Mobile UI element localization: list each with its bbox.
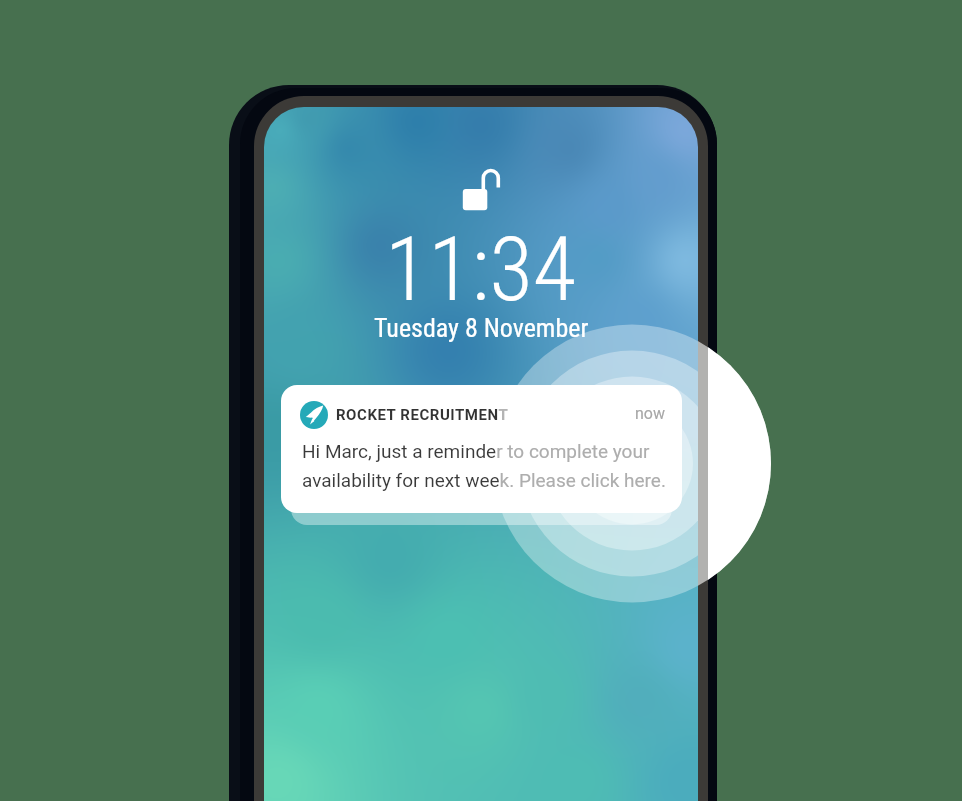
button[interactable]: [291, 440, 672, 525]
button[interactable]: ROCKET RECRUITMENT: [281, 385, 682, 513]
other: Unlocked: [460, 166, 504, 214]
staticText: Hi Marc, just a reminder to complete you…: [302, 440, 670, 492]
staticText: ROCKET RECRUITMENT: [336, 406, 509, 424]
staticText: now: [635, 404, 665, 423]
staticText: 11:34: [385, 217, 577, 321]
staticText: Tuesday 8 November: [374, 313, 589, 343]
